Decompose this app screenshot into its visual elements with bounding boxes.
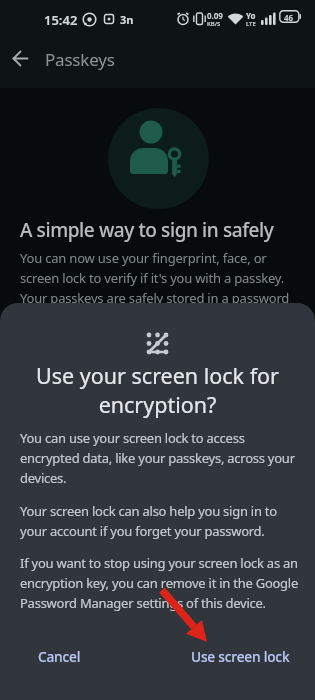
staticText: You can use your screen lock to access e… <box>20 429 295 487</box>
staticText: Use your screen lock for encryption? <box>0 361 315 419</box>
staticText: Your screen lock can also help you sign … <box>20 502 277 540</box>
button[interactable]: Cancel <box>24 633 95 680</box>
staticText: Yo <box>246 10 256 21</box>
button[interactable]: Use screen lock <box>177 633 304 680</box>
staticText: 0.09 <box>207 10 223 21</box>
staticText: 15:42 <box>44 11 78 29</box>
staticText: You can now use your fingerprint, face, … <box>20 249 290 307</box>
staticText: 3n <box>120 12 134 27</box>
staticText: A simple way to sign in safely <box>20 217 274 243</box>
staticText: LTE <box>246 20 256 28</box>
button[interactable] <box>12 50 29 67</box>
staticText: KB/S <box>207 20 221 28</box>
staticText: 46 <box>284 12 294 23</box>
staticText: If you want to stop using your screen lo… <box>20 554 299 612</box>
staticText: Passkeys <box>45 48 115 71</box>
staticText: Use screen lock <box>191 647 290 666</box>
staticText: Cancel <box>38 647 81 666</box>
